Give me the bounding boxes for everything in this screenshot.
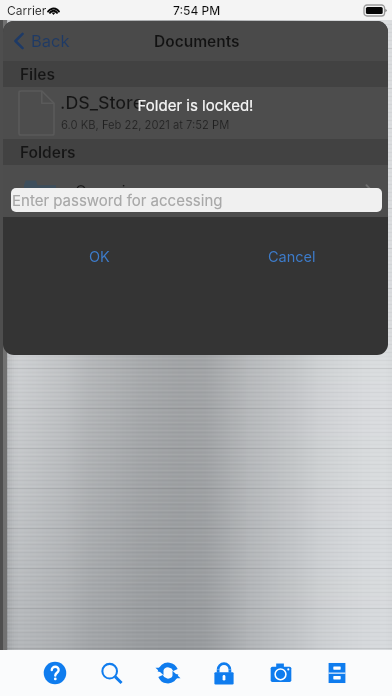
button[interactable]: Refresh — [151, 656, 185, 690]
staticText: Folder is locked! — [3, 96, 388, 114]
staticText: .DS_Store — [60, 92, 144, 114]
staticText: Back — [31, 31, 70, 51]
staticText: Open-in — [75, 182, 135, 201]
button[interactable]: OK — [3, 243, 195, 271]
button[interactable]: Enter password for accessing — [11, 188, 382, 212]
staticText: Documents — [154, 32, 240, 51]
button[interactable]: Open-in — [3, 165, 388, 217]
staticText: Carrier — [7, 3, 47, 18]
staticText: OK — [89, 248, 110, 266]
button[interactable]: .DS_Store — [3, 87, 388, 139]
button[interactable]: Help — [38, 656, 72, 690]
button[interactable]: Search — [94, 656, 128, 690]
staticText: Folders — [20, 143, 76, 162]
button[interactable]: Back — [14, 31, 70, 51]
staticText: Enter password for accessing — [12, 191, 223, 209]
button[interactable]: Lock — [207, 656, 241, 690]
staticText: Cancel — [268, 248, 316, 266]
button[interactable]: Camera — [264, 656, 298, 690]
button[interactable]: Cancel — [195, 243, 388, 271]
button[interactable]: Files cabinet — [320, 656, 354, 690]
staticText: 7:54 PM — [173, 3, 221, 18]
staticText: 6.0 KB, Feb 22, 2021 at 7:52 PM — [61, 118, 230, 132]
staticText: Files — [20, 65, 55, 84]
